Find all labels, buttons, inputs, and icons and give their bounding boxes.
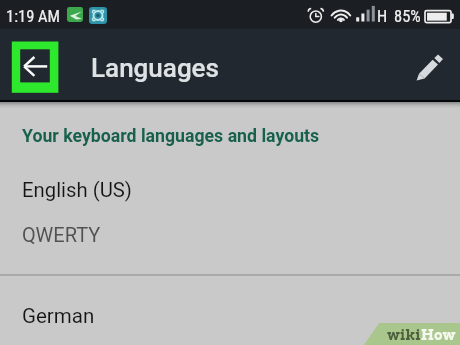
button[interactable]: English (US): [0, 160, 460, 275]
button[interactable]: Back: [11, 41, 59, 93]
staticText: 85%: [394, 7, 421, 26]
staticText: Your keyboard languages and layouts: [22, 126, 320, 147]
staticText: Languages: [91, 53, 220, 83]
staticText: H: [377, 7, 388, 26]
staticText: QWERTY: [22, 223, 101, 246]
staticText: 1:19 AM: [6, 7, 61, 26]
staticText: wiki: [387, 327, 421, 344]
staticText: English (US): [22, 178, 132, 202]
staticText: How: [421, 327, 456, 344]
button[interactable]: Edit: [407, 44, 452, 89]
button[interactable]: German: [0, 277, 460, 345]
staticText: German: [22, 304, 95, 328]
